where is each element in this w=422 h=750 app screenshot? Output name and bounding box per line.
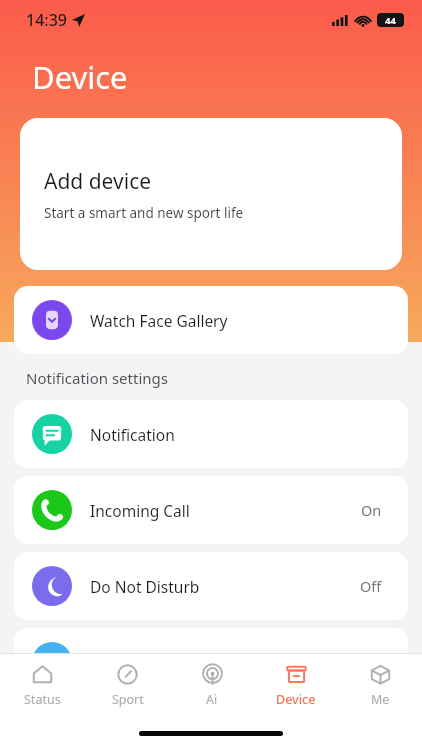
- button[interactable]: Me: [338, 654, 422, 716]
- staticText: Do Not Disturb: [90, 576, 360, 597]
- staticText: Anti-Lost Reminder: [90, 652, 360, 673]
- staticText: Ai: [206, 691, 218, 708]
- staticText: Device: [32, 56, 128, 98]
- staticText: Notification settings: [26, 368, 168, 388]
- staticText: Me: [371, 691, 390, 708]
- staticText: Notification: [90, 424, 390, 445]
- button[interactable]: Add device: [20, 118, 402, 270]
- staticText: On: [361, 500, 382, 520]
- button[interactable]: Device: [254, 654, 338, 716]
- staticText: 14:39: [26, 9, 67, 31]
- staticText: Add device: [44, 167, 152, 196]
- staticText: Start a smart and new sport life: [44, 204, 244, 222]
- staticText: [90, 717, 390, 738]
- button[interactable]: Sport: [85, 654, 170, 716]
- button[interactable]: Status: [0, 654, 85, 716]
- staticText: Device: [276, 691, 316, 708]
- staticText: Sport: [112, 691, 144, 708]
- staticText: Watch Face Gallery: [90, 310, 390, 331]
- button[interactable]: Watch Face Gallery: [14, 286, 408, 354]
- button[interactable]: Incoming Call: [14, 476, 408, 544]
- button[interactable]: [14, 704, 408, 750]
- button[interactable]: Ai: [170, 654, 254, 716]
- staticText: Off: [360, 652, 382, 672]
- button[interactable]: Notification: [14, 400, 408, 468]
- button[interactable]: Do Not Disturb: [14, 552, 408, 620]
- staticText: Incoming Call: [90, 500, 361, 521]
- staticText: 44: [385, 14, 396, 27]
- staticText: Status: [24, 691, 61, 708]
- staticText: Off: [360, 576, 382, 596]
- button[interactable]: Anti-Lost Reminder: [14, 628, 408, 696]
